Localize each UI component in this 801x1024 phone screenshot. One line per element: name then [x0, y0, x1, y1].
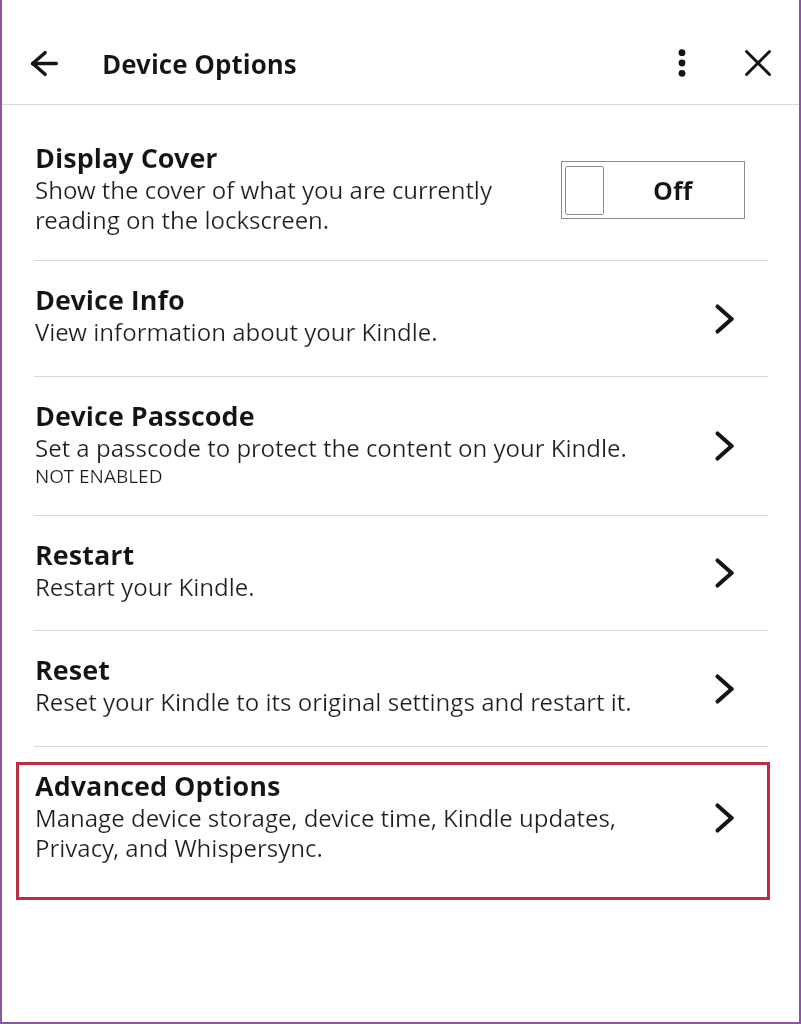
button[interactable]: Reset — [0, 631, 801, 746]
staticText: Device Passcode — [35, 401, 255, 433]
button[interactable]: Close — [725, 31, 789, 95]
staticText: Set a passcode to protect the content on… — [35, 433, 627, 463]
staticText: Advanced Options — [35, 771, 281, 803]
staticText: Device Info — [35, 285, 185, 317]
button[interactable]: Off — [561, 161, 745, 219]
button[interactable]: More options — [659, 31, 723, 95]
button[interactable]: Display Cover — [0, 105, 801, 260]
staticText: Show the cover of what you are currently… — [35, 175, 493, 235]
staticText: NOT ENABLED — [35, 463, 163, 489]
staticText: Device Options — [102, 46, 297, 81]
button[interactable]: Back — [0, 27, 72, 99]
staticText: View information about your Kindle. — [35, 317, 438, 347]
button[interactable]: Device Info — [0, 261, 801, 376]
staticText: Reset your Kindle to its original settin… — [35, 687, 632, 717]
button[interactable]: Advanced Options — [16, 762, 770, 900]
staticText: Reset — [35, 655, 110, 687]
staticText: Display Cover — [35, 143, 218, 175]
staticText: Off — [653, 173, 693, 207]
staticText: Restart — [35, 540, 135, 572]
staticText: Restart your Kindle. — [35, 572, 255, 602]
staticText: Manage device storage, device time, Kind… — [35, 803, 616, 863]
button[interactable]: Device Passcode — [0, 377, 801, 515]
button[interactable]: Restart — [0, 516, 801, 630]
